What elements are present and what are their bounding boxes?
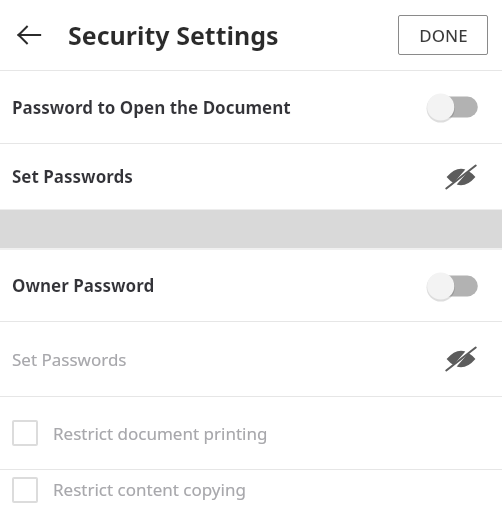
button[interactable]: Restrict content copying [0, 470, 502, 509]
button[interactable]: Toggle [422, 87, 484, 127]
button[interactable]: Set Passwords [0, 144, 502, 209]
staticText: Set Passwords [12, 165, 133, 188]
button[interactable]: Owner Password [0, 250, 502, 321]
staticText: Restrict content copying [53, 478, 246, 501]
button[interactable]: Set Passwords [0, 322, 502, 396]
staticText: DONE [419, 24, 468, 47]
button[interactable]: Show or hide passwords [438, 154, 484, 200]
staticText: Restrict document printing [53, 422, 268, 445]
button[interactable]: Toggle [422, 266, 484, 306]
button[interactable]: DONE [398, 15, 488, 55]
button[interactable]: Restrict document printing [0, 397, 502, 469]
staticText: Owner Password [12, 274, 155, 297]
staticText: Password to Open the Document [12, 96, 291, 119]
staticText: Security Settings [68, 18, 279, 52]
staticText: Set Passwords [12, 348, 127, 371]
button[interactable]: Show or hide passwords [438, 336, 484, 382]
button[interactable]: Back [8, 14, 50, 56]
button[interactable]: Password to Open the Document [0, 71, 502, 143]
